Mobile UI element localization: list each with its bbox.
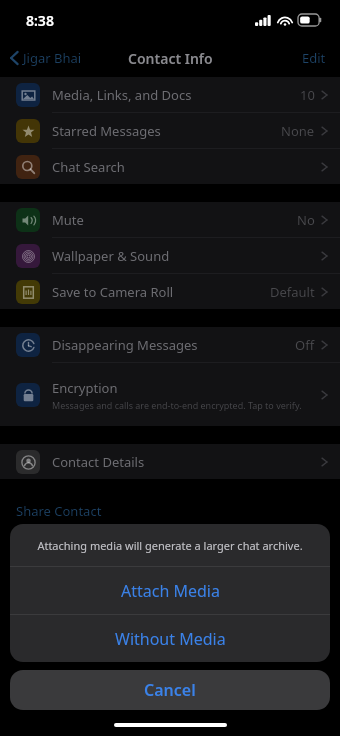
staticText: Messages and calls are end-to-end encryp… (52, 399, 302, 411)
staticText: Save to Camera Roll (52, 283, 174, 301)
staticText: 8:38 (26, 11, 54, 30)
staticText: Encryption (52, 379, 118, 397)
staticText: Edit (302, 49, 326, 67)
staticText: Contact Details (52, 453, 145, 471)
staticText: Contact Info (128, 49, 213, 68)
staticText: Attach Media (121, 580, 220, 602)
button[interactable]: Cancel (10, 670, 330, 710)
button[interactable]: Contact Details (0, 444, 340, 479)
staticText: Wallpaper & Sound (52, 247, 170, 265)
button[interactable]: Edit (288, 43, 340, 73)
button[interactable]: Save to Camera Roll (0, 274, 340, 309)
staticText: Share Contact (16, 502, 102, 520)
button[interactable]: Media, Links, and Docs (0, 77, 340, 112)
staticText: Default (270, 283, 315, 301)
button[interactable]: Chat Search (0, 149, 340, 184)
staticText: Chat Search (52, 158, 125, 176)
button[interactable]: Disappearing Messages (0, 327, 340, 362)
button[interactable]: Encryption (0, 363, 340, 426)
other: Back (10, 50, 19, 66)
button[interactable]: Back (0, 45, 90, 71)
button[interactable]: Wallpaper & Sound (0, 238, 340, 273)
button[interactable]: Without Media (10, 615, 330, 662)
staticText: Off (295, 336, 315, 354)
button[interactable]: Starred Messages (0, 113, 340, 148)
staticText: Attaching media will generate a larger c… (37, 538, 303, 553)
staticText: Without Media (115, 628, 226, 650)
staticText: No (297, 211, 315, 229)
staticText: 10 (300, 86, 315, 104)
button[interactable]: Attach Media (10, 567, 330, 614)
staticText: None (281, 122, 315, 140)
staticText: Jigar Bhai (23, 49, 82, 67)
staticText: Media, Links, and Docs (52, 86, 192, 104)
button[interactable]: Share Contact (0, 495, 340, 527)
staticText: Cancel (144, 679, 196, 701)
staticText: Starred Messages (52, 122, 161, 140)
staticText: Disappearing Messages (52, 336, 198, 354)
staticText: Mute (52, 211, 84, 229)
button[interactable]: Mute (0, 202, 340, 237)
